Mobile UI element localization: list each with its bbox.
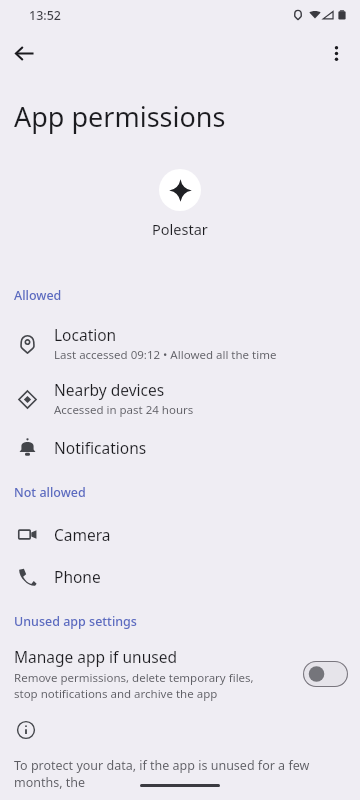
button[interactable]: Location	[0, 316, 360, 371]
staticText: Phone	[54, 566, 101, 587]
button[interactable]: Phone	[0, 555, 360, 597]
staticText: Manage app if unused	[14, 646, 177, 667]
staticText: Not allowed	[14, 484, 86, 501]
staticText: Accessed in past 24 hours	[54, 402, 194, 418]
button[interactable]: Back	[6, 35, 42, 71]
button[interactable]: More options	[318, 35, 354, 71]
staticText: App permissions	[14, 98, 226, 135]
button[interactable]: Manage app if unused	[0, 642, 360, 705]
staticText: Camera	[54, 524, 111, 545]
staticText: Last accessed 09:12 • Allowed all the ti…	[54, 347, 277, 363]
button[interactable]: Camera	[0, 513, 360, 555]
button[interactable]: Manage app if unused	[303, 661, 348, 687]
staticText: Location	[54, 324, 117, 345]
button[interactable]: Nearby devices	[0, 371, 360, 426]
staticText: Remove permissions, delete temporary fil…	[14, 670, 273, 701]
staticText: Nearby devices	[54, 379, 165, 400]
staticText: Polestar	[152, 219, 208, 239]
staticText: Unused app settings	[14, 613, 137, 630]
staticText: To protect your data, if the app is unus…	[14, 757, 352, 791]
staticText: Allowed	[14, 287, 62, 304]
staticText: Notifications	[54, 437, 147, 458]
staticText: 13:52	[29, 7, 62, 24]
button[interactable]: Notifications	[0, 426, 360, 468]
other: Info	[15, 719, 37, 741]
